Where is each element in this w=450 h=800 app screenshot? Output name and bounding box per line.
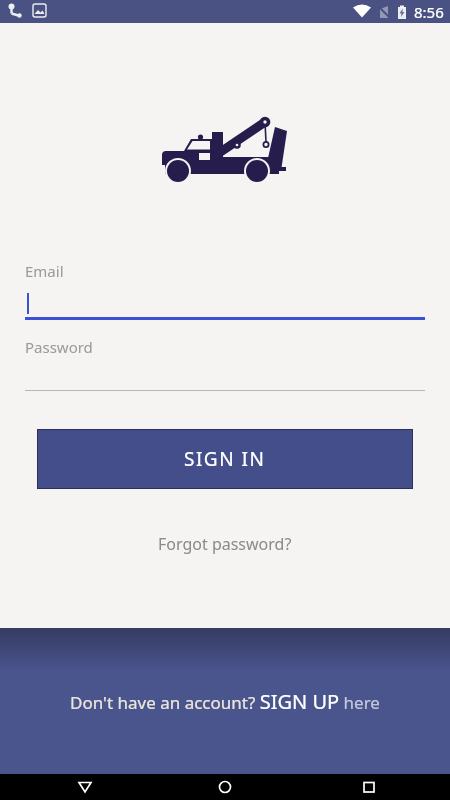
button[interactable] <box>25 357 425 391</box>
button[interactable]: SIGN IN <box>38 430 412 488</box>
staticText: Forgot password? <box>158 533 292 555</box>
button[interactable]: Don't have an account? SIGN UP here <box>0 628 450 774</box>
button[interactable] <box>25 281 425 320</box>
staticText: SIGN IN <box>184 446 266 472</box>
button[interactable]: Forgot password? <box>150 525 300 563</box>
button[interactable] <box>204 774 246 800</box>
staticText: Don't have an account? SIGN UP here <box>70 688 380 715</box>
staticText: Email <box>25 261 64 281</box>
staticText: 8:56 <box>414 2 444 22</box>
staticText: Password <box>25 337 93 357</box>
button[interactable] <box>348 774 390 800</box>
button[interactable] <box>64 774 106 800</box>
